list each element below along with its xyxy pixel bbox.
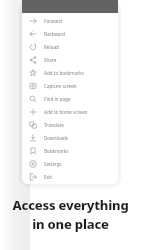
other: Backward bbox=[29, 30, 37, 38]
other: Bookmarks bbox=[29, 147, 37, 155]
staticText: Access everything bbox=[12, 196, 129, 214]
button[interactable]: Capture screen bbox=[22, 79, 118, 92]
button[interactable]: Bookmarks bbox=[22, 144, 118, 157]
button[interactable]: Exit bbox=[22, 170, 118, 183]
staticText: Reload bbox=[44, 44, 59, 50]
button[interactable]: Downloads bbox=[22, 131, 118, 144]
other: Add to bookmarks bbox=[29, 69, 37, 77]
button[interactable]: Translate bbox=[22, 118, 118, 131]
other: Exit bbox=[29, 173, 37, 181]
staticText: Forward bbox=[44, 18, 62, 24]
button[interactable]: Share bbox=[22, 53, 118, 66]
staticText: Add to home screen bbox=[44, 109, 88, 115]
button[interactable]: Settings bbox=[22, 157, 118, 170]
staticText: Share bbox=[44, 57, 57, 63]
other: Downloads bbox=[29, 134, 37, 142]
staticText: Backward bbox=[44, 31, 66, 37]
staticText: Bookmarks bbox=[44, 148, 69, 154]
other: Settings bbox=[29, 160, 37, 168]
other: Forward bbox=[29, 17, 37, 25]
button[interactable]: Reload bbox=[22, 40, 118, 53]
button[interactable]: Find in page bbox=[22, 92, 118, 105]
button[interactable]: Add to bookmarks bbox=[22, 66, 118, 79]
other: Find in page bbox=[29, 95, 37, 103]
button[interactable]: Forward bbox=[22, 14, 118, 27]
button[interactable]: Backward bbox=[22, 27, 118, 40]
other: Reload bbox=[29, 43, 37, 51]
staticText: Add to bookmarks bbox=[44, 70, 84, 76]
other: Capture screen bbox=[29, 82, 37, 90]
staticText: in one place bbox=[32, 215, 109, 233]
staticText: Capture screen bbox=[44, 83, 77, 89]
other: Add to home screen bbox=[29, 108, 37, 116]
button[interactable]: Add to home screen bbox=[22, 105, 118, 118]
other: Share bbox=[29, 56, 37, 64]
staticText: Downloads bbox=[44, 135, 69, 141]
staticText: Settings bbox=[44, 161, 62, 167]
other: Translate bbox=[29, 121, 37, 129]
staticText: Exit bbox=[44, 174, 52, 180]
staticText: Translate bbox=[44, 122, 64, 128]
staticText: Find in page bbox=[44, 96, 71, 102]
